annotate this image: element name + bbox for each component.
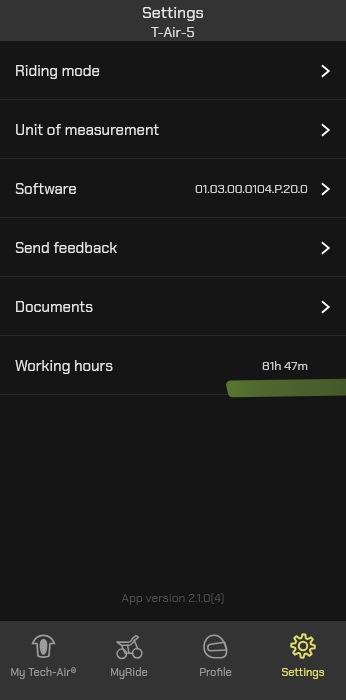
button[interactable]: Unit of measurement bbox=[0, 100, 346, 159]
staticText: 01.03.00.0104.P.20.0 bbox=[195, 181, 308, 197]
button[interactable]: Settings bbox=[259, 621, 346, 700]
staticText: Settings bbox=[281, 665, 325, 679]
button[interactable]: Send feedback bbox=[0, 218, 346, 277]
button[interactable]: Software bbox=[0, 159, 346, 218]
staticText: App version 2.1.0(4) bbox=[0, 590, 346, 606]
staticText: MyRide bbox=[110, 665, 148, 679]
button[interactable]: MyRide bbox=[86, 621, 172, 700]
button[interactable]: Profile bbox=[172, 621, 259, 700]
staticText: Settings bbox=[142, 2, 204, 23]
staticText: Documents bbox=[15, 297, 93, 317]
staticText: Profile bbox=[199, 665, 232, 679]
button[interactable]: My Tech-Air bbox=[0, 621, 86, 700]
staticText: My Tech-Air® bbox=[10, 665, 77, 679]
staticText: 81h 47m bbox=[262, 358, 308, 374]
staticText: Working hours bbox=[15, 356, 113, 376]
button[interactable]: Documents bbox=[0, 277, 346, 336]
staticText: Riding mode bbox=[15, 61, 100, 81]
button[interactable]: Working hours bbox=[0, 336, 346, 395]
staticText: Send feedback bbox=[15, 238, 118, 258]
staticText: T-Air-5 bbox=[151, 23, 195, 41]
staticText: Software bbox=[15, 179, 77, 199]
button[interactable]: Riding mode bbox=[0, 41, 346, 100]
staticText: Unit of measurement bbox=[15, 120, 160, 140]
